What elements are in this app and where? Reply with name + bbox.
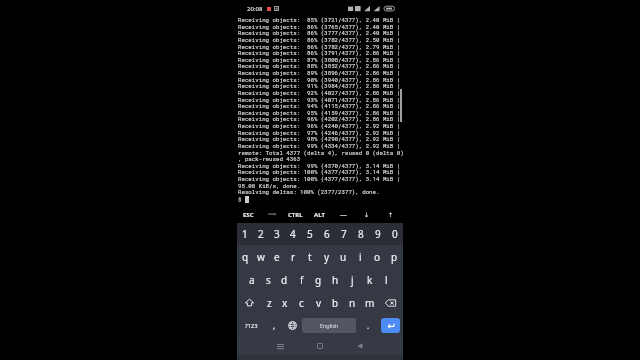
button[interactable]: o — [369, 245, 386, 268]
button[interactable]: x — [277, 291, 293, 314]
staticText: $ — [238, 195, 245, 203]
staticText: Receiving objects: 96% (4202/4377), 2.86… — [238, 115, 401, 123]
button[interactable]: h — [327, 268, 344, 291]
staticText: q — [242, 250, 249, 264]
button[interactable]: Enter — [381, 318, 400, 333]
staticText: ↓ — [364, 211, 370, 218]
staticText: Receiving objects: 85% (3721/4377), 2.40… — [238, 16, 401, 24]
button[interactable]: 6 — [318, 223, 335, 245]
button[interactable]: 7 — [335, 223, 352, 245]
staticText: Receiving objects: 98% (4290/4377), 2.92… — [238, 135, 401, 143]
button[interactable]: 9 — [369, 223, 386, 245]
button[interactable]: s — [260, 268, 276, 291]
staticText: i — [359, 250, 362, 264]
staticText: t — [308, 250, 312, 264]
staticText: 8 — [358, 227, 364, 241]
staticText: l — [385, 273, 388, 287]
button[interactable]: 2 — [253, 223, 269, 245]
button[interactable]: g — [310, 268, 327, 291]
button[interactable]: CTRL — [283, 206, 307, 223]
button[interactable]: , — [265, 314, 284, 337]
staticText: — — [340, 210, 347, 220]
staticText: Receiving objects: 93% (4071/4377), 2.86… — [238, 96, 401, 104]
staticText: Receiving objects: 99% (4370/4377), 3.14… — [238, 162, 401, 170]
button[interactable]: ?123 — [237, 314, 265, 337]
staticText: remote: Total 4377 (delta 4), reused 0 (… — [238, 149, 404, 157]
staticText: Receiving objects: 100% (4377/4377), 3.1… — [238, 168, 401, 176]
staticText: Receiving objects: 88% (3852/4377), 2.86… — [238, 62, 401, 70]
button[interactable]: ESC — [237, 206, 260, 223]
staticText: 3 — [274, 227, 280, 241]
button[interactable]: u — [335, 245, 352, 268]
staticText: , pack-reused 4363 — [238, 155, 301, 163]
staticText: x — [282, 296, 288, 310]
button[interactable]: Back — [340, 337, 380, 355]
staticText: f — [300, 273, 304, 287]
staticText: v — [316, 296, 322, 310]
button[interactable]: Backspace — [378, 291, 403, 314]
button[interactable]: . — [358, 314, 378, 337]
button[interactable]: y — [318, 245, 335, 268]
button[interactable]: Home — [300, 337, 340, 355]
staticText: s — [266, 273, 271, 287]
staticText: g — [315, 273, 322, 287]
staticText: c — [299, 296, 304, 310]
staticText: ALT — [314, 211, 325, 219]
button[interactable]: f — [293, 268, 310, 291]
button[interactable]: q — [237, 245, 253, 268]
staticText: z — [267, 296, 272, 310]
staticText: Receiving objects: 86% (3791/4377), 2.86… — [238, 49, 401, 57]
staticText: CTRL — [288, 211, 303, 219]
button[interactable]: j — [344, 268, 361, 291]
button[interactable]: a — [244, 268, 260, 291]
button[interactable]: d — [276, 268, 293, 291]
button[interactable]: 1 — [237, 223, 253, 245]
button[interactable]: ↑ — [379, 206, 403, 223]
staticText: English — [320, 322, 339, 329]
staticText: Receiving objects: 94% (4115/4377), 2.86… — [238, 102, 401, 110]
staticText: 2 — [258, 227, 264, 241]
button[interactable]: k — [361, 268, 378, 291]
staticText: m — [365, 296, 375, 310]
staticText: 9 — [375, 227, 381, 241]
button[interactable]: — — [331, 206, 355, 223]
button[interactable]: n — [344, 291, 361, 314]
staticText: , — [273, 320, 276, 331]
button[interactable]: Tab — [260, 206, 283, 223]
staticText: 6 — [324, 227, 330, 241]
button[interactable]: 4 — [285, 223, 301, 245]
button[interactable]: English — [302, 318, 356, 333]
button[interactable]: l — [378, 268, 395, 291]
staticText: a — [249, 273, 255, 287]
button[interactable]: t — [301, 245, 318, 268]
button[interactable]: 8 — [352, 223, 369, 245]
staticText: Receiving objects: 86% (3782/4377), 2.79… — [238, 43, 401, 51]
button[interactable]: c — [293, 291, 310, 314]
staticText: b — [332, 296, 339, 310]
staticText: n — [349, 296, 356, 310]
button[interactable]: z — [261, 291, 277, 314]
button[interactable]: ↓ — [355, 206, 379, 223]
staticText: 5 — [307, 227, 313, 241]
staticText: Receiving objects: 100% (4377/4377), 3.1… — [238, 175, 401, 183]
button[interactable]: w — [253, 245, 269, 268]
button[interactable]: ALT — [307, 206, 331, 223]
button[interactable]: v — [310, 291, 327, 314]
button[interactable]: r — [285, 245, 301, 268]
staticText: j — [351, 273, 354, 287]
button[interactable]: b — [327, 291, 344, 314]
staticText: 20:08 — [247, 5, 263, 13]
button[interactable]: 0 — [386, 223, 403, 245]
button[interactable]: p — [386, 245, 403, 268]
button[interactable]: Change language — [284, 314, 300, 337]
button[interactable]: e — [269, 245, 285, 268]
button[interactable]: i — [352, 245, 369, 268]
button[interactable]: m — [361, 291, 378, 314]
button[interactable]: 5 — [301, 223, 318, 245]
button[interactable]: Shift — [237, 291, 261, 314]
button[interactable]: 3 — [269, 223, 285, 245]
staticText: Receiving objects: 99% (4334/4377), 2.92… — [238, 142, 401, 150]
staticText: u — [340, 250, 347, 264]
staticText: 0 — [392, 227, 398, 241]
button[interactable]: Recent apps — [260, 337, 300, 355]
